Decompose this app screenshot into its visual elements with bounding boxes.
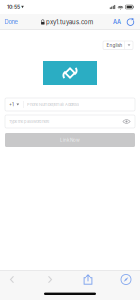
- staticText: Phone Number/Email Address: [27, 102, 79, 107]
- staticText: AA: [113, 19, 121, 25]
- button[interactable]: Done: [0, 14, 21, 30]
- staticText: Done: [4, 18, 17, 25]
- button[interactable]: Reload page: [126, 14, 135, 30]
- button[interactable]: Open in Safari: [115, 270, 137, 288]
- staticText: 10:55: [7, 4, 20, 10]
- button[interactable]: Forward: [39, 270, 61, 288]
- staticText: Link Now: [60, 137, 80, 143]
- staticText: Type the password here: [9, 119, 49, 124]
- button[interactable]: English: [103, 41, 133, 49]
- button[interactable]: Page settings: [112, 14, 121, 30]
- staticText: English: [106, 42, 122, 48]
- staticText: +1: [9, 102, 14, 107]
- button[interactable]: Share: [77, 270, 99, 288]
- button[interactable]: Back: [1, 270, 23, 288]
- staticText: pxy1.tuyaus.com: [46, 18, 93, 26]
